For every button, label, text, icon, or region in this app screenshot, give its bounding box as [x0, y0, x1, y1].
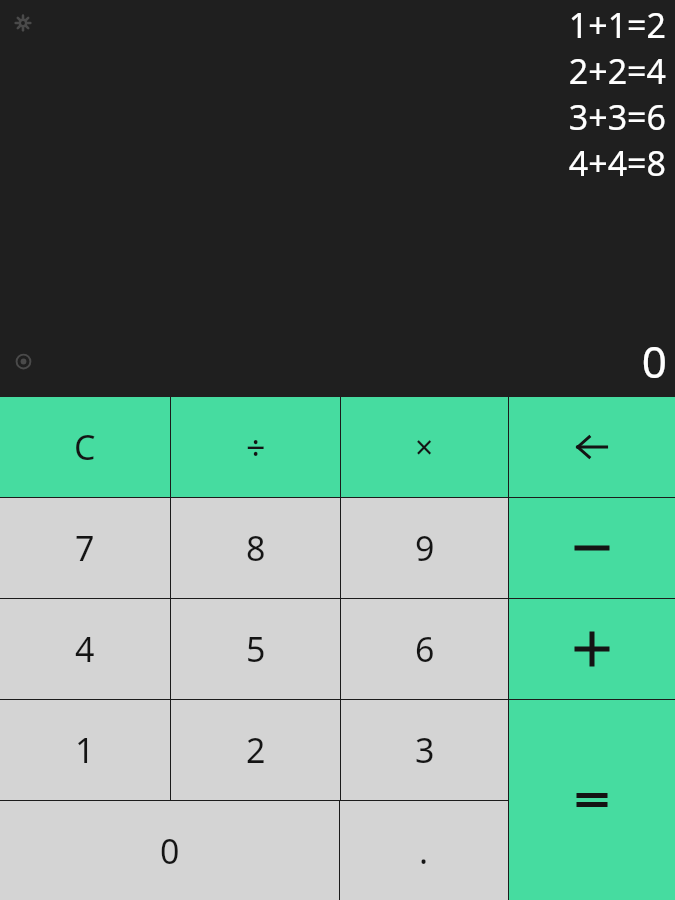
staticText: 7	[75, 525, 95, 571]
button[interactable]: 5	[171, 599, 340, 699]
staticText: 2+2=4	[568, 48, 666, 94]
staticText: 2	[246, 727, 266, 773]
staticText: ×	[415, 425, 434, 469]
staticText: C	[74, 424, 96, 470]
staticText: 5	[246, 626, 266, 672]
staticText: 0	[160, 828, 180, 874]
staticText: 4	[75, 626, 95, 672]
button[interactable]: Equals	[509, 700, 675, 900]
button[interactable]: 8	[171, 498, 340, 598]
button[interactable]: Minus	[509, 498, 675, 598]
button[interactable]: 4	[0, 599, 170, 699]
button[interactable]: ×	[341, 397, 508, 497]
button[interactable]: Settings	[10, 10, 36, 36]
button[interactable]: ÷	[171, 397, 340, 497]
button[interactable]: .	[340, 801, 508, 900]
button[interactable]: Plus	[509, 599, 675, 699]
staticText: 1+1=2	[568, 2, 666, 48]
button[interactable]: 9	[341, 498, 508, 598]
staticText: ÷	[246, 424, 266, 470]
staticText: 3	[415, 727, 435, 773]
staticText: 4+4=8	[568, 140, 666, 186]
button[interactable]: Backspace	[509, 397, 675, 497]
staticText: 3+3=6	[568, 94, 666, 140]
staticText: .	[419, 828, 429, 874]
staticText: 8	[246, 525, 266, 571]
button[interactable]: 2	[171, 700, 340, 800]
button[interactable]: 6	[341, 599, 508, 699]
button[interactable]: 0	[0, 801, 339, 900]
button[interactable]: 7	[0, 498, 170, 598]
staticText: 6	[415, 626, 435, 672]
staticText: 0	[641, 331, 667, 391]
button[interactable]: 1	[0, 700, 170, 800]
button[interactable]: History	[9, 347, 37, 375]
button[interactable]: C	[0, 397, 170, 497]
staticText: 9	[415, 525, 435, 571]
staticText: 1	[75, 727, 95, 773]
button[interactable]: 3	[341, 700, 508, 800]
